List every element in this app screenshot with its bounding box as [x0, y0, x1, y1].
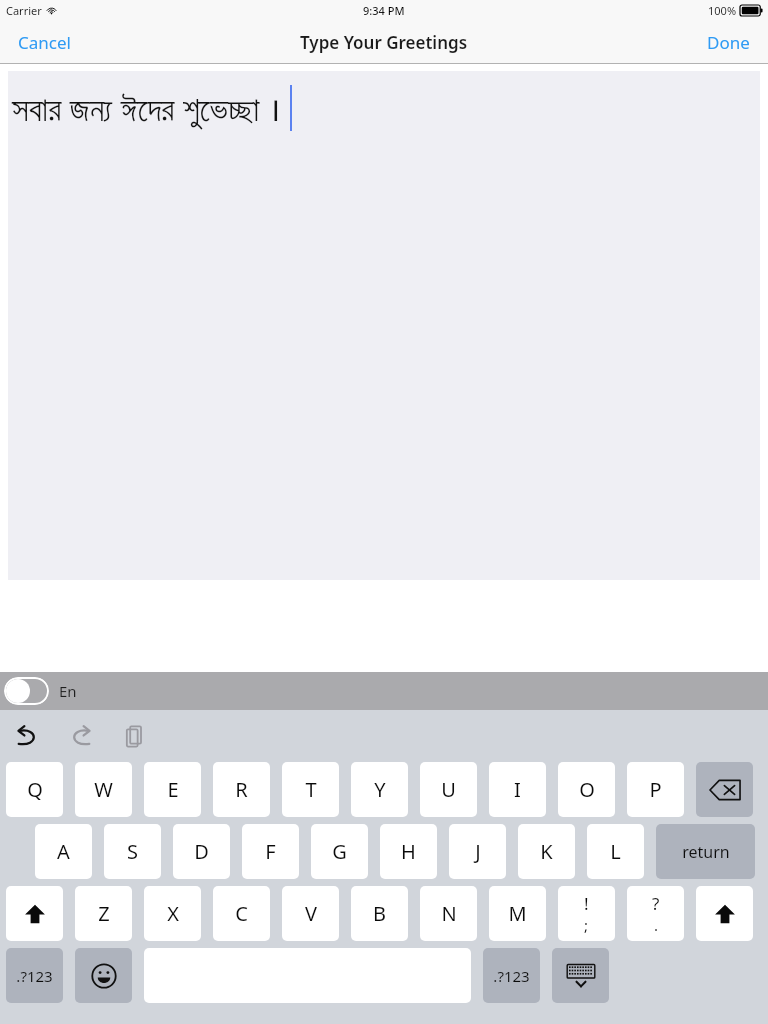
- button[interactable]: I: [489, 762, 546, 817]
- button[interactable]: J: [449, 824, 506, 879]
- button[interactable]: !: [558, 886, 615, 941]
- button[interactable]: Y: [351, 762, 408, 817]
- staticText: X: [167, 900, 179, 927]
- button[interactable]: C: [213, 886, 270, 941]
- staticText: P: [649, 776, 662, 803]
- button[interactable]: H: [380, 824, 437, 879]
- staticText: J: [475, 838, 481, 865]
- staticText: U: [441, 776, 456, 803]
- staticText: L: [610, 838, 621, 865]
- button[interactable]: Redo: [64, 719, 98, 753]
- staticText: N: [441, 900, 457, 927]
- button[interactable]: F: [242, 824, 299, 879]
- button[interactable]: Done: [689, 23, 768, 62]
- staticText: K: [540, 838, 553, 865]
- button[interactable]: Q: [6, 762, 63, 817]
- button[interactable]: G: [311, 824, 368, 879]
- button[interactable]: T: [282, 762, 339, 817]
- staticText: Done: [707, 31, 750, 54]
- staticText: ;: [584, 915, 589, 935]
- button[interactable]: Emoji: [75, 948, 132, 1003]
- staticText: V: [305, 900, 317, 927]
- button[interactable]: U: [420, 762, 477, 817]
- button[interactable]: Paste: [118, 719, 152, 753]
- staticText: R: [235, 776, 248, 803]
- staticText: .: [654, 915, 659, 935]
- button[interactable]: B: [351, 886, 408, 941]
- staticText: D: [194, 838, 209, 865]
- staticText: E: [167, 776, 179, 803]
- staticText: En: [59, 681, 77, 701]
- button[interactable]: S: [104, 824, 161, 879]
- staticText: H: [401, 838, 416, 865]
- button[interactable]: Shift: [696, 886, 753, 941]
- button[interactable]: V: [282, 886, 339, 941]
- button[interactable]: Undo: [10, 719, 44, 753]
- button[interactable]: A: [35, 824, 92, 879]
- button[interactable]: M: [489, 886, 546, 941]
- staticText: G: [332, 838, 347, 865]
- staticText: W: [94, 776, 113, 803]
- button[interactable]: সবার জন্য ঈদের শুভেচ্ছা ।: [8, 71, 760, 580]
- staticText: T: [305, 776, 317, 803]
- button[interactable]: P: [627, 762, 684, 817]
- staticText: 9:34 PM: [363, 3, 405, 18]
- staticText: I: [514, 776, 521, 803]
- button[interactable]: R: [213, 762, 270, 817]
- button[interactable]: Hide keyboard: [552, 948, 609, 1003]
- staticText: S: [127, 838, 138, 865]
- button[interactable]: D: [173, 824, 230, 879]
- button[interactable]: K: [518, 824, 575, 879]
- staticText: Y: [374, 776, 386, 803]
- staticText: O: [579, 776, 595, 803]
- button[interactable]: X: [144, 886, 201, 941]
- button[interactable]: Z: [75, 886, 132, 941]
- button[interactable]: W: [75, 762, 132, 817]
- staticText: Carrier: [6, 3, 42, 18]
- button[interactable]: E: [144, 762, 201, 817]
- staticText: 100%: [708, 3, 737, 18]
- staticText: ?: [652, 892, 660, 915]
- button[interactable]: Toggle language: [4, 677, 49, 705]
- staticText: Q: [27, 776, 43, 803]
- button[interactable]: .?123: [6, 948, 63, 1003]
- button[interactable]: Shift: [6, 886, 63, 941]
- staticText: Type Your Greetings: [300, 31, 468, 54]
- staticText: B: [373, 900, 386, 927]
- staticText: M: [508, 900, 527, 927]
- button[interactable]: N: [420, 886, 477, 941]
- staticText: !: [584, 892, 589, 915]
- button[interactable]: L: [587, 824, 644, 879]
- button[interactable]: return: [656, 824, 755, 879]
- button[interactable]: Backspace: [696, 762, 753, 817]
- staticText: Z: [98, 900, 110, 927]
- staticText: F: [265, 838, 276, 865]
- staticText: Cancel: [18, 31, 71, 54]
- button[interactable]: .?123: [483, 948, 540, 1003]
- button[interactable]: Cancel: [0, 23, 89, 62]
- staticText: A: [57, 838, 70, 865]
- staticText: সবার জন্য ঈদের শুভেচ্ছা ।: [12, 86, 281, 131]
- staticText: C: [235, 900, 248, 927]
- button[interactable]: ?: [627, 886, 684, 941]
- staticText: return: [682, 841, 730, 863]
- staticText: .?123: [16, 966, 53, 986]
- button[interactable]: O: [558, 762, 615, 817]
- staticText: .?123: [493, 966, 530, 986]
